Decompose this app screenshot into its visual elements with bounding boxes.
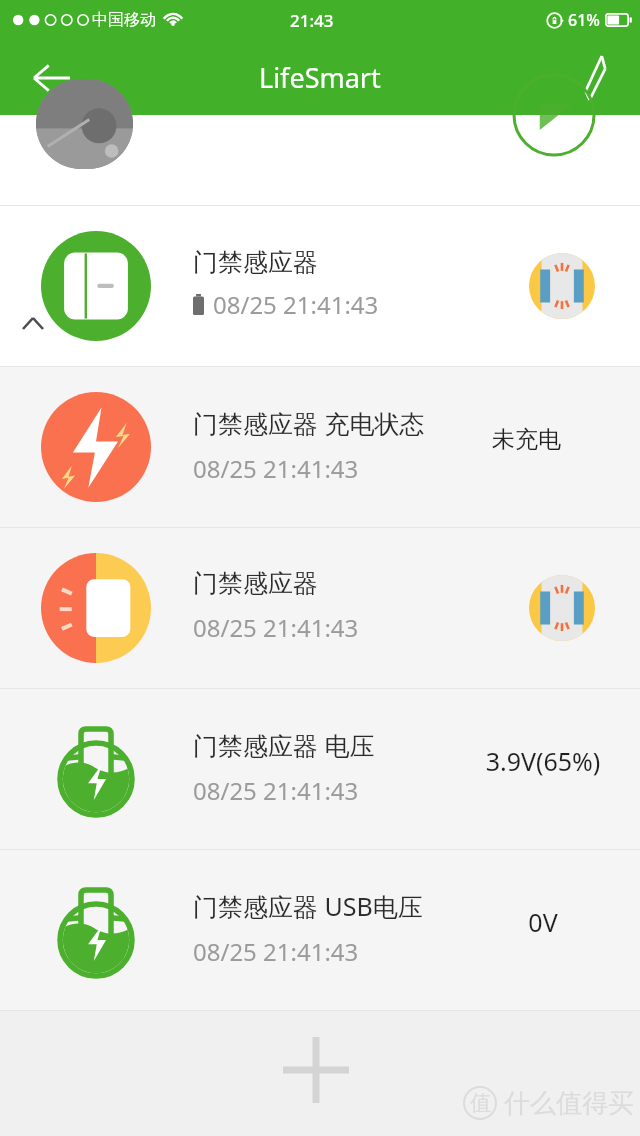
staticText: 08/25 21:41:43: [193, 611, 359, 644]
staticText: 未充电: [492, 425, 561, 454]
staticText: LifeSmart: [259, 59, 381, 96]
button[interactable]: 门禁感应器 USB电压: [0, 850, 640, 1010]
staticText: 3.9V(65%): [468, 744, 618, 778]
staticText: 08/25 21:41:43: [193, 774, 359, 807]
staticText: 门禁感应器: [193, 247, 318, 278]
staticText: 08/25 21:41:43: [193, 935, 359, 968]
staticText: 0V: [468, 905, 618, 939]
staticText: 08/25 21:41:43: [213, 288, 379, 321]
staticText: 61%: [568, 9, 600, 31]
staticText: 08/25 21:41:43: [193, 452, 359, 485]
staticText: 什么值得买: [504, 1087, 634, 1120]
staticText: 中国移动: [92, 10, 156, 30]
staticText: 门禁感应器 充电状态: [193, 406, 425, 440]
button[interactable]: [0, 115, 640, 205]
button[interactable]: Back: [22, 49, 80, 107]
button[interactable]: Edit: [566, 50, 622, 106]
button[interactable]: 门禁感应器 充电状态: [0, 367, 640, 527]
staticText: 21:43: [290, 9, 334, 32]
button[interactable]: 门禁感应器: [0, 528, 640, 688]
button[interactable]: 门禁感应器 电压: [0, 689, 640, 849]
button[interactable]: 门禁感应器: [0, 206, 640, 366]
staticText: 门禁感应器: [193, 568, 318, 599]
staticText: 值: [470, 1090, 491, 1116]
staticText: 门禁感应器 USB电压: [193, 889, 423, 923]
button[interactable]: Add: [276, 1030, 356, 1110]
staticText: 门禁感应器 电压: [193, 728, 375, 762]
